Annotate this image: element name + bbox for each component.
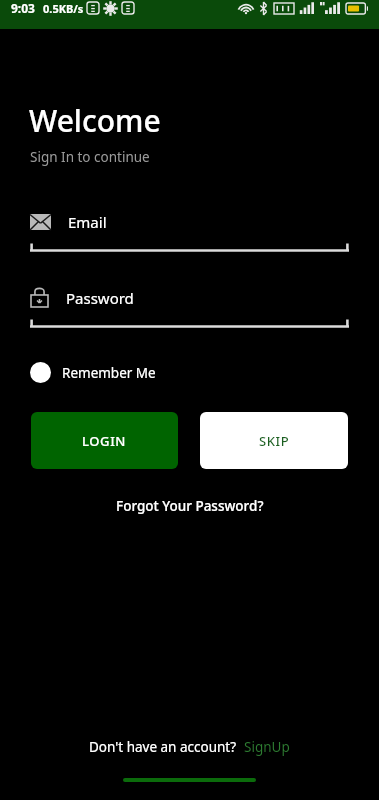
button[interactable]: SKIP bbox=[200, 412, 348, 469]
staticText: Sign In to continue bbox=[30, 148, 150, 166]
staticText: Email bbox=[68, 212, 107, 232]
staticText: LOGIN bbox=[82, 432, 127, 450]
other: Password bbox=[30, 287, 49, 308]
staticText: 9:03 bbox=[11, 0, 35, 16]
button[interactable]: Remember Me bbox=[24, 356, 162, 389]
staticText: 0.5KB/s bbox=[43, 1, 84, 16]
button[interactable]: Forgot Your Password? bbox=[106, 493, 274, 519]
staticText: Welcome bbox=[29, 100, 161, 141]
staticText: Password bbox=[66, 288, 134, 308]
button[interactable]: Password bbox=[30, 287, 349, 328]
staticText: SKIP bbox=[259, 432, 290, 450]
button[interactable]: Email bbox=[30, 212, 349, 252]
button[interactable]: SignUp bbox=[244, 738, 290, 756]
staticText: Remember Me bbox=[62, 364, 156, 382]
staticText: Don't have an account? bbox=[89, 738, 237, 756]
staticText: SignUp bbox=[244, 738, 290, 756]
button[interactable]: LOGIN bbox=[31, 412, 178, 469]
staticText: Forgot Your Password? bbox=[116, 497, 264, 515]
other: Email bbox=[30, 214, 51, 230]
